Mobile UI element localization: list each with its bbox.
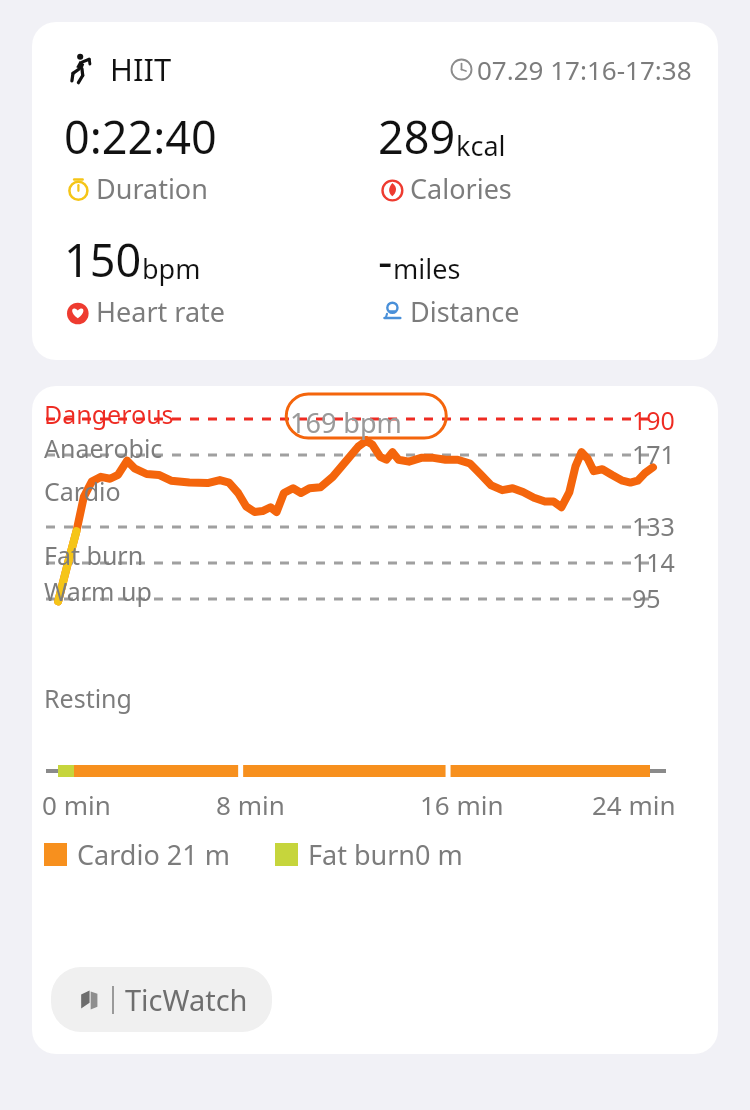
staticText: bpm — [142, 250, 201, 287]
other: HIIT workout — [64, 51, 100, 87]
staticText: Resting — [44, 681, 132, 715]
staticText: miles — [393, 250, 461, 287]
staticText: kcal — [456, 127, 506, 164]
button[interactable]: HIIT workout — [32, 22, 718, 360]
staticText: Calories — [410, 170, 512, 207]
staticText: Dangerous — [44, 397, 174, 431]
staticText: 16 min — [420, 787, 504, 822]
staticText: 0 min — [42, 787, 111, 822]
other: TicWatch — [75, 986, 103, 1014]
staticText: 150 — [64, 229, 142, 290]
staticText: 169 bpm — [290, 404, 402, 441]
staticText: 95 — [632, 581, 661, 615]
staticText: 07.29 17:16-17:38 — [477, 52, 692, 87]
staticText: Cardio — [44, 474, 121, 508]
staticText: 289 — [378, 106, 456, 167]
staticText: 114 — [632, 545, 675, 579]
staticText: 24 min — [592, 787, 676, 822]
staticText: Fat burn0 m — [308, 836, 463, 873]
staticText: Cardio 21 m — [77, 836, 230, 873]
staticText: Distance — [410, 293, 520, 330]
staticText: Heart rate — [96, 293, 226, 330]
staticText: Fat burn — [44, 538, 144, 572]
staticText: - — [378, 229, 393, 290]
staticText: Warm up — [44, 574, 152, 608]
staticText: HIIT — [110, 48, 172, 90]
staticText: 190 — [632, 403, 675, 437]
staticText: 0:22:40 — [64, 106, 217, 167]
button[interactable]: Dangerous — [32, 386, 718, 1054]
staticText: 171 — [632, 437, 675, 471]
staticText: Anaerobic — [44, 431, 163, 465]
staticText: 8 min — [216, 787, 285, 822]
staticText: TicWatch — [125, 980, 248, 1019]
staticText: 133 — [632, 509, 675, 543]
button[interactable]: TicWatch — [51, 967, 272, 1032]
staticText: Duration — [96, 170, 208, 207]
